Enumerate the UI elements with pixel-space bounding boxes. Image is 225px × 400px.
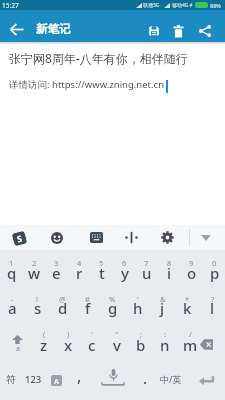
staticText: 6 xyxy=(122,258,127,268)
button[interactable]: r xyxy=(68,263,91,283)
button[interactable]: f xyxy=(75,298,100,318)
staticText: & xyxy=(160,294,166,304)
button[interactable]: . xyxy=(135,367,155,389)
button[interactable] xyxy=(196,333,222,355)
button[interactable] xyxy=(88,229,104,246)
staticText: 7 xyxy=(144,258,149,268)
button[interactable]: k xyxy=(175,298,200,318)
staticText: - xyxy=(11,294,14,304)
staticText: 123 xyxy=(25,373,42,386)
staticText: d xyxy=(58,298,68,318)
button[interactable]: o xyxy=(180,263,203,283)
staticText: i xyxy=(167,263,172,283)
button[interactable]: t xyxy=(90,263,113,283)
staticText: l xyxy=(210,298,215,318)
staticText: p xyxy=(210,263,220,283)
staticText: e xyxy=(52,263,61,283)
button[interactable] xyxy=(123,229,139,246)
button[interactable] xyxy=(196,229,216,247)
staticText: z xyxy=(40,335,48,355)
staticText: ( xyxy=(43,329,46,339)
button[interactable]: , xyxy=(68,365,90,387)
button[interactable]: z xyxy=(32,335,56,355)
button[interactable]: c xyxy=(80,335,104,355)
staticText: S xyxy=(16,232,24,245)
staticText: @ xyxy=(59,294,66,304)
button[interactable]: 123 xyxy=(22,369,44,389)
button[interactable]: a xyxy=(3,330,31,358)
staticText: 3 xyxy=(54,258,59,268)
staticText: 8 xyxy=(167,258,172,268)
button[interactable]: m xyxy=(178,335,202,355)
button[interactable]: b xyxy=(129,335,153,355)
staticText: n xyxy=(160,335,170,355)
button[interactable]: d xyxy=(50,298,75,318)
staticText: : xyxy=(164,329,167,339)
staticText: ' xyxy=(137,294,139,304)
staticText: f xyxy=(85,298,91,318)
staticText: y xyxy=(121,263,129,283)
button[interactable]: u xyxy=(135,263,158,283)
staticText: c xyxy=(88,335,96,355)
button[interactable] xyxy=(166,17,191,45)
button[interactable]: e xyxy=(45,263,68,283)
button[interactable]: 符 xyxy=(0,369,22,389)
button[interactable]: q xyxy=(0,263,23,283)
staticText: a xyxy=(8,298,17,318)
staticText: m xyxy=(183,335,198,355)
button[interactable]: A xyxy=(44,369,69,391)
button[interactable]: a xyxy=(0,298,25,318)
staticText: u xyxy=(142,263,152,283)
staticText: ' xyxy=(91,329,93,339)
staticText: % xyxy=(109,294,116,304)
button[interactable] xyxy=(2,13,32,45)
staticText: t xyxy=(99,263,105,283)
staticText: 张宁网8周年-八年有你，相伴随行 xyxy=(9,50,188,66)
button[interactable] xyxy=(192,17,217,45)
staticText: 1 xyxy=(9,258,14,268)
button[interactable]: j xyxy=(150,298,175,318)
button[interactable]: v xyxy=(105,335,129,355)
staticText: s xyxy=(34,298,42,318)
staticText: ) xyxy=(67,329,70,339)
button[interactable] xyxy=(49,229,65,246)
staticText: 联通3G xyxy=(143,2,160,9)
staticText: 4 xyxy=(77,258,82,268)
button[interactable] xyxy=(186,367,225,393)
staticText: o xyxy=(187,263,197,283)
staticText: 0 xyxy=(212,258,217,268)
button[interactable]: y xyxy=(113,263,136,283)
staticText: x xyxy=(64,335,73,355)
staticText: r xyxy=(76,263,83,283)
button[interactable]: i xyxy=(158,263,181,283)
staticText: , xyxy=(77,365,82,387)
staticText: 2 xyxy=(32,258,37,268)
button[interactable]: l xyxy=(200,298,225,318)
staticText: " xyxy=(115,329,119,339)
button[interactable]: w xyxy=(23,263,46,283)
button[interactable] xyxy=(90,362,135,396)
staticText: * xyxy=(185,294,190,304)
staticText: b xyxy=(136,335,146,355)
button[interactable] xyxy=(159,229,176,246)
staticText: . xyxy=(143,368,148,388)
button[interactable]: g xyxy=(100,298,125,318)
button[interactable]: p xyxy=(203,263,225,283)
button[interactable]: n xyxy=(153,335,177,355)
staticText: k xyxy=(183,298,192,318)
button[interactable]: h xyxy=(125,298,150,318)
staticText: 中/英 xyxy=(160,373,182,385)
button[interactable]: S xyxy=(11,230,28,246)
staticText: 5 xyxy=(99,258,104,268)
staticText: a xyxy=(16,344,20,354)
button[interactable]: s xyxy=(25,298,50,318)
staticText: v xyxy=(113,335,121,355)
staticText: q xyxy=(7,263,17,283)
button[interactable] xyxy=(141,17,167,45)
staticText: 移动4G xyxy=(172,2,189,9)
staticText: ? xyxy=(211,294,215,304)
button[interactable]: 中/英 xyxy=(155,369,186,389)
button[interactable]: x xyxy=(56,335,80,355)
staticText: A xyxy=(54,376,59,386)
staticText: / xyxy=(189,329,192,339)
